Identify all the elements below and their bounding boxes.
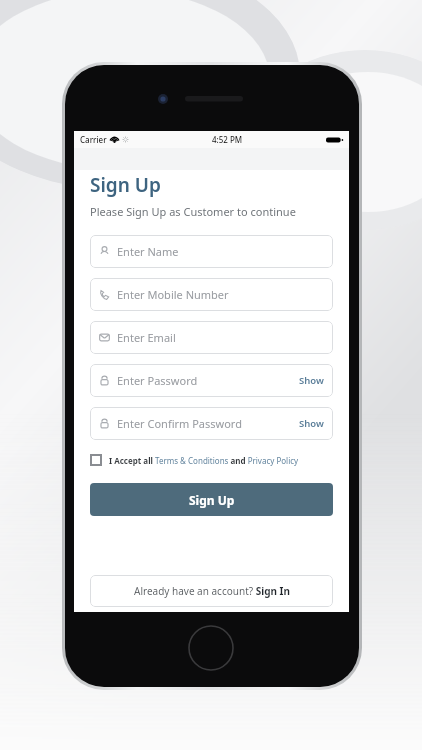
other: Accept terms checkbox	[90, 454, 102, 466]
button[interactable]: Enter Mobile Number	[90, 278, 333, 311]
button[interactable]: Sign Up	[90, 483, 333, 516]
staticText: Enter Password	[117, 373, 198, 388]
button[interactable]: Show	[299, 417, 324, 430]
button[interactable]: Accept terms checkbox	[90, 454, 333, 466]
staticText: Already have an account? Sign In	[134, 584, 290, 598]
staticText: Enter Name	[117, 244, 179, 259]
staticText: Carrier	[80, 134, 107, 145]
button[interactable]: Enter Name	[90, 235, 333, 268]
staticText: Show	[299, 374, 324, 387]
button[interactable]: Already have an account? Sign In	[90, 575, 333, 607]
staticText: Show	[299, 417, 324, 430]
staticText: Sign Up	[189, 492, 235, 508]
staticText: Please Sign Up as Customer to continue	[90, 204, 296, 219]
staticText: Enter Mobile Number	[117, 287, 229, 302]
button[interactable]: Enter Password	[90, 364, 333, 397]
button[interactable]: Enter Confirm Password	[90, 407, 333, 440]
staticText: Enter Confirm Password	[117, 416, 242, 431]
staticText: Enter Email	[117, 330, 176, 345]
staticText: 4:52 PM	[212, 134, 243, 145]
button[interactable]: Enter Email	[90, 321, 333, 354]
staticText: Sign Up	[90, 172, 161, 198]
staticText: I Accept all Terms & Conditions and Priv…	[109, 455, 299, 466]
button[interactable]: Show	[299, 374, 324, 387]
